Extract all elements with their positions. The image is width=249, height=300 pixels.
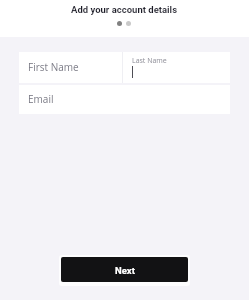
button[interactable]: Last Name xyxy=(123,52,230,83)
staticText: First Name xyxy=(28,60,79,74)
staticText: Last Name xyxy=(132,56,167,66)
staticText: Email xyxy=(28,92,54,106)
button[interactable]: Next xyxy=(61,257,188,282)
button[interactable]: First Name xyxy=(19,52,122,83)
staticText: Next xyxy=(115,265,135,276)
button[interactable]: Email xyxy=(19,85,230,114)
staticText: Add your account details xyxy=(71,4,178,15)
